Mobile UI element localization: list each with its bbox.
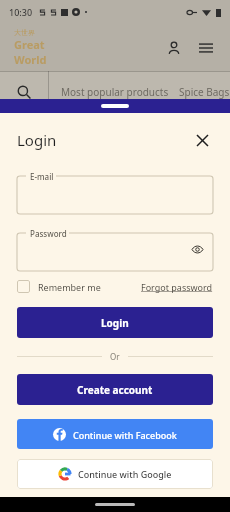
staticText: Login [101, 316, 129, 330]
staticText: Continue with Facebook [73, 429, 177, 441]
staticText: Login [17, 130, 57, 150]
button[interactable]: Login [17, 307, 213, 338]
staticText: Great [14, 37, 45, 52]
staticText: Remember me [38, 281, 101, 293]
staticText: Password [30, 228, 67, 239]
button[interactable]: Forgot password [141, 281, 213, 293]
staticText: E-mail [30, 171, 54, 182]
staticText: Or [110, 351, 120, 362]
button[interactable]: Continue with Facebook [17, 419, 213, 449]
button[interactable]: Continue with Google [17, 459, 213, 489]
button[interactable]: Menu [194, 36, 218, 60]
button[interactable]: Create account [17, 374, 213, 405]
button[interactable]: Account [162, 36, 186, 60]
staticText: 10:30 [9, 6, 33, 18]
staticText: World [14, 52, 47, 67]
button[interactable]: Show password [187, 239, 207, 259]
staticText: Create account [77, 383, 153, 397]
staticText: Continue with Google [78, 468, 172, 480]
button[interactable]: Remember me [17, 280, 101, 293]
button[interactable]: Close [191, 129, 213, 151]
button[interactable]: Search [0, 71, 48, 113]
button[interactable]: Spice Bags [179, 85, 230, 99]
staticText: 大世界 [14, 28, 35, 37]
button[interactable]: Most popular products [61, 85, 169, 99]
